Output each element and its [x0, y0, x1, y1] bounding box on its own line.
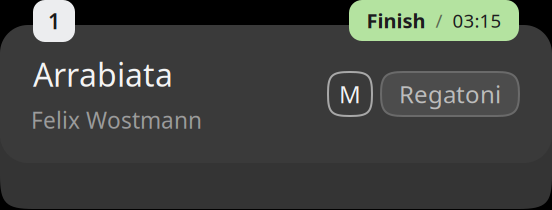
staticText: Felix Wostmann	[31, 105, 202, 135]
staticText: /	[435, 8, 442, 33]
staticText: Regatoni	[399, 78, 501, 110]
staticText: 1	[48, 7, 60, 35]
button[interactable]: Medium portion	[328, 72, 372, 116]
button[interactable]: Step 1	[33, 0, 75, 42]
staticText: M	[339, 78, 361, 110]
button[interactable]: Finish	[349, 0, 519, 41]
staticText: Finish	[366, 7, 425, 34]
staticText: Arrabiata	[33, 53, 173, 95]
button[interactable]: Regatoni	[381, 72, 519, 116]
staticText: 03:15	[452, 8, 501, 33]
